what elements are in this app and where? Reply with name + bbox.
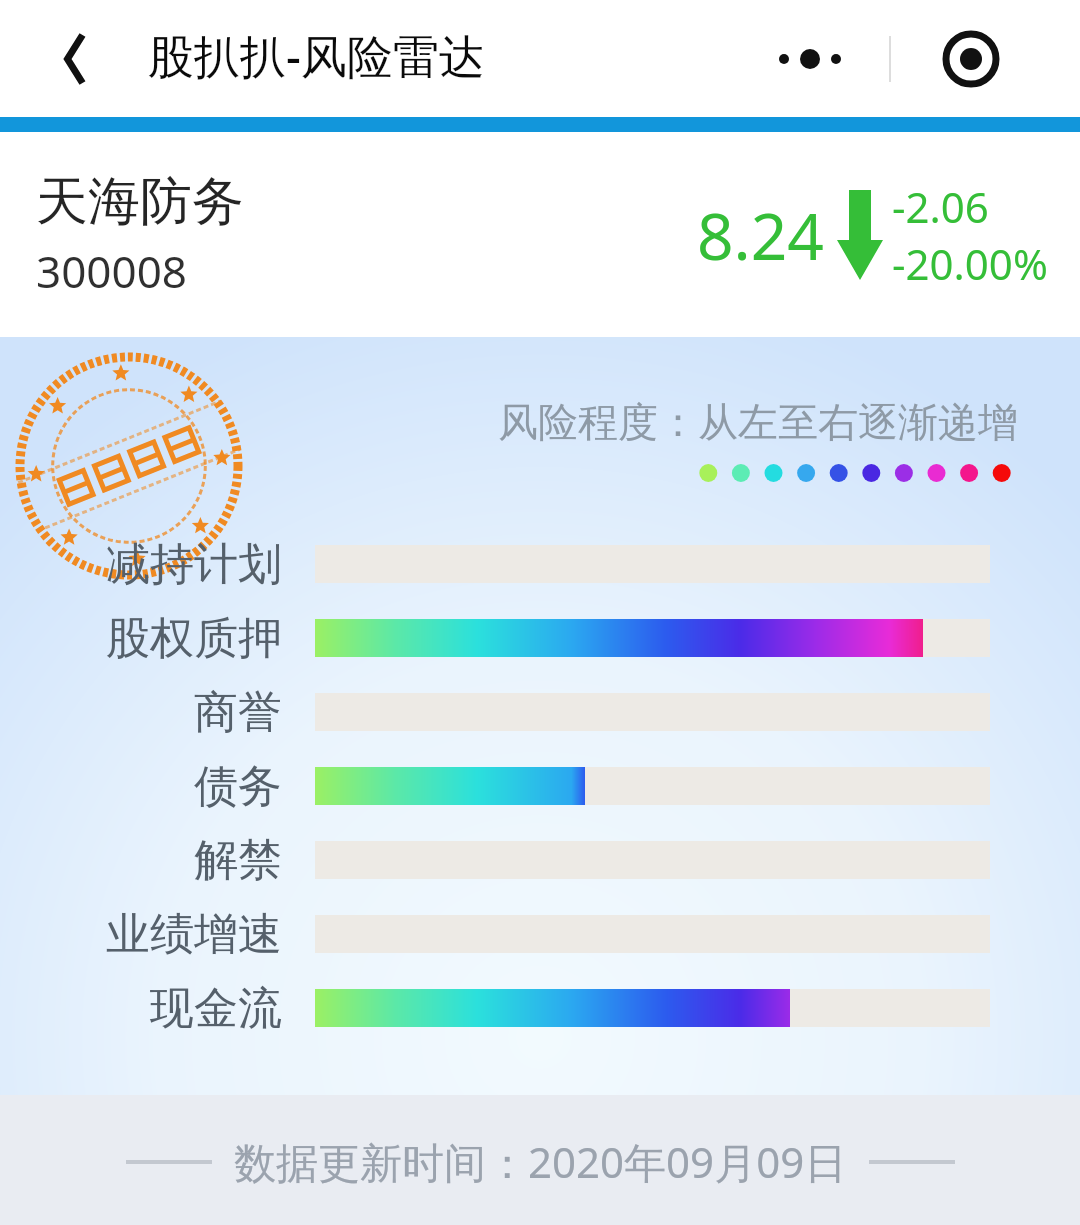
staticText: -2.06 [892, 178, 989, 235]
staticText: 300008 [36, 241, 188, 301]
staticText: 数据更新时间：2020年09月09日 [234, 1133, 847, 1190]
button[interactable]: 商誉 [0, 675, 1080, 749]
staticText: 8.24 [697, 192, 824, 279]
button[interactable]: 股权质押 [0, 601, 1080, 675]
staticText: 商誉 [0, 685, 282, 740]
staticText: 风险程度：从左至右逐渐递增 [498, 397, 1018, 447]
button[interactable]: 减持计划 [0, 527, 1080, 601]
staticText: 解禁 [0, 833, 282, 888]
staticText: 业绩增速 [0, 907, 282, 962]
button[interactable]: Back [40, 24, 110, 94]
button[interactable]: Menu [730, 20, 1050, 98]
button[interactable]: 业绩增速 [0, 897, 1080, 971]
staticText: 减持计划 [0, 537, 282, 592]
button[interactable]: 债务 [0, 749, 1080, 823]
staticText: 股权质押 [0, 611, 282, 666]
button[interactable]: 现金流 [0, 971, 1080, 1045]
staticText: 天海防务 [36, 169, 244, 235]
staticText: -20.00% [892, 235, 1048, 292]
button[interactable]: 解禁 [0, 823, 1080, 897]
staticText: 债务 [0, 759, 282, 814]
staticText: 现金流 [0, 981, 282, 1036]
staticText: 股扒扒-风险雷达 [148, 24, 485, 87]
